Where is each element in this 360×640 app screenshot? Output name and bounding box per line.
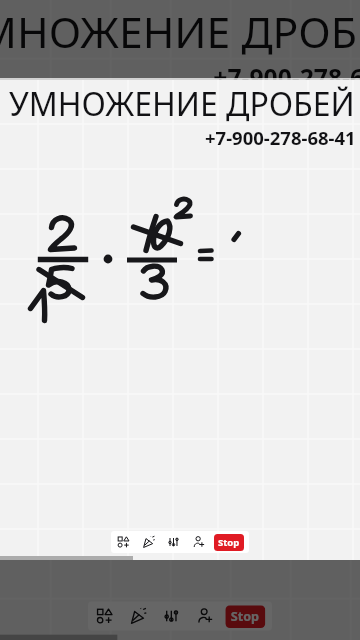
- button[interactable]: Stop: [214, 534, 244, 551]
- button[interactable]: Add shapes: [88, 601, 121, 631]
- button[interactable]: Add person: [186, 531, 211, 553]
- button[interactable]: Add shapes: [111, 531, 136, 553]
- button[interactable]: Add person: [188, 601, 221, 631]
- button[interactable]: Settings: [161, 531, 186, 553]
- staticText: УМНОЖЕНИЕ ДРОБЕЙ: [0, 3, 360, 61]
- button[interactable]: Celebrate: [136, 531, 161, 553]
- button[interactable]: Celebrate: [121, 601, 155, 631]
- button[interactable]: Stop: [225, 605, 265, 628]
- staticText: +7-900-278-68-41: [213, 60, 360, 93]
- button[interactable]: Settings: [155, 601, 188, 631]
- staticText: +7-900-278-68-41: [205, 125, 356, 150]
- staticText: Stop: [218, 536, 240, 549]
- staticText: УМНОЖЕНИЕ ДРОБЕЙ: [9, 82, 355, 126]
- staticText: Stop: [231, 608, 260, 625]
